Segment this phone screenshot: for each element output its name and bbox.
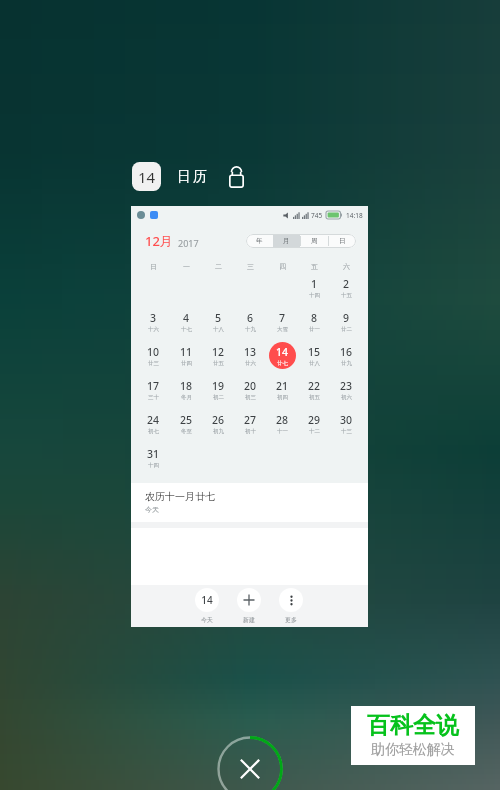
staticText: 初六: [341, 394, 352, 401]
button[interactable]: 5: [205, 308, 232, 335]
button[interactable]: 24: [140, 410, 167, 437]
staticText: 30: [340, 413, 353, 427]
button[interactable]: 25: [173, 410, 200, 437]
staticText: 8: [311, 311, 318, 325]
button[interactable]: 新建: [237, 585, 261, 624]
staticText: 初七: [148, 428, 159, 435]
staticText: 20: [244, 379, 257, 393]
button[interactable]: 6: [237, 308, 264, 335]
staticText: 6: [247, 311, 254, 325]
button[interactable]: 13: [237, 342, 264, 369]
staticText: 初十: [245, 428, 256, 435]
button[interactable]: 23: [333, 376, 360, 403]
staticText: 五: [311, 262, 318, 271]
button[interactable]: 日: [328, 234, 356, 248]
staticText: 11: [180, 345, 193, 359]
staticText: 廿四: [181, 360, 192, 367]
button[interactable]: 27: [237, 410, 264, 437]
staticText: 12月: [145, 232, 173, 250]
button[interactable]: 年: [246, 234, 273, 248]
staticText: 5: [215, 311, 222, 325]
staticText: 2: [343, 277, 350, 291]
staticText: 初四: [277, 394, 288, 401]
button[interactable]: 4: [173, 308, 200, 335]
staticText: 十九: [245, 326, 256, 333]
staticText: 31: [147, 447, 160, 461]
button[interactable]: 21: [269, 376, 296, 403]
staticText: 13: [244, 345, 257, 359]
button[interactable]: 30: [333, 410, 360, 437]
button[interactable]: 31: [140, 444, 167, 471]
button[interactable]: 周: [300, 234, 328, 248]
button[interactable]: 11: [173, 342, 200, 369]
staticText: 28: [276, 413, 289, 427]
staticText: 日历: [176, 168, 208, 186]
button[interactable]: Close all: [218, 737, 282, 790]
button[interactable]: 2: [333, 274, 360, 301]
button[interactable]: 月: [273, 234, 300, 248]
button[interactable]: 10: [140, 342, 167, 369]
button[interactable]: 9: [333, 308, 360, 335]
staticText: 25: [180, 413, 193, 427]
staticText: 2017: [178, 237, 199, 249]
staticText: 六: [343, 262, 350, 271]
staticText: 月: [283, 237, 290, 245]
button[interactable]: 20: [237, 376, 264, 403]
staticText: 廿九: [341, 360, 352, 367]
staticText: 四: [279, 262, 286, 271]
button[interactable]: 26: [205, 410, 232, 437]
button[interactable]: 3: [140, 308, 167, 335]
staticText: 745: [311, 211, 323, 220]
staticText: 十一: [277, 428, 288, 435]
button[interactable]: 14: [269, 342, 296, 369]
staticText: 27: [244, 413, 257, 427]
button[interactable]: 18: [173, 376, 200, 403]
staticText: 26: [212, 413, 225, 427]
staticText: 初五: [309, 394, 320, 401]
button[interactable]: 28: [269, 410, 296, 437]
button[interactable]: 745: [131, 206, 368, 627]
staticText: 29: [308, 413, 321, 427]
staticText: 9: [343, 311, 350, 325]
button[interactable]: 14: [132, 162, 161, 191]
staticText: 三: [247, 262, 254, 271]
button[interactable]: 29: [301, 410, 328, 437]
staticText: 1: [311, 277, 318, 291]
staticText: 22: [308, 379, 321, 393]
staticText: 更多: [285, 616, 297, 624]
staticText: 廿三: [148, 360, 159, 367]
staticText: 廿二: [341, 326, 352, 333]
staticText: 今天: [145, 505, 159, 514]
staticText: 24: [147, 413, 160, 427]
button[interactable]: 1: [301, 274, 328, 301]
staticText: 初三: [245, 394, 256, 401]
button[interactable]: 17: [140, 376, 167, 403]
staticText: 廿八: [309, 360, 320, 367]
staticText: 10: [147, 345, 160, 359]
button[interactable]: 19: [205, 376, 232, 403]
staticText: 3: [150, 311, 157, 325]
button[interactable]: 7: [269, 308, 296, 335]
staticText: 农历十一月廿七: [145, 490, 215, 503]
staticText: 百科全说: [367, 711, 459, 740]
staticText: 15: [308, 345, 321, 359]
button[interactable]: 8: [301, 308, 328, 335]
button[interactable]: 14: [195, 585, 219, 624]
staticText: 十二: [309, 428, 320, 435]
button[interactable]: 12: [205, 342, 232, 369]
button[interactable]: 22: [301, 376, 328, 403]
button[interactable]: Lock task: [225, 166, 247, 188]
button[interactable]: 更多: [279, 585, 303, 624]
staticText: 十四: [148, 462, 159, 469]
button[interactable]: 15: [301, 342, 328, 369]
staticText: 14: [138, 167, 156, 187]
staticText: 十四: [309, 292, 320, 299]
staticText: 初九: [213, 428, 224, 435]
staticText: 16: [340, 345, 353, 359]
staticText: 14:18: [346, 211, 363, 220]
button[interactable]: 16: [333, 342, 360, 369]
staticText: 廿一: [309, 326, 320, 333]
staticText: 4: [183, 311, 190, 325]
staticText: 19: [212, 379, 225, 393]
button[interactable]: 农历十一月廿七: [131, 483, 368, 522]
